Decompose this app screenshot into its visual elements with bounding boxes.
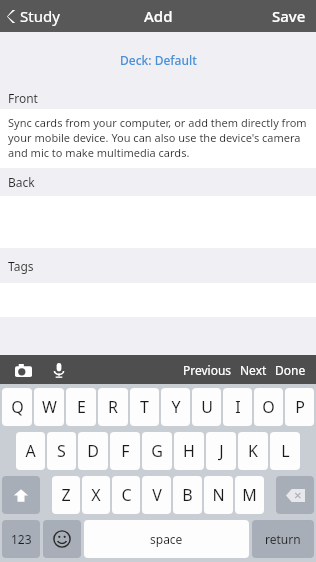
- staticText: V: [152, 484, 162, 506]
- button[interactable]: Q: [2, 388, 32, 426]
- button[interactable]: U: [192, 388, 221, 426]
- staticText: I: [235, 396, 241, 418]
- staticText: F: [121, 440, 130, 462]
- staticText: Front: [8, 90, 38, 106]
- staticText: E: [77, 396, 86, 418]
- staticText: K: [248, 440, 258, 462]
- staticText: H: [183, 440, 195, 462]
- staticText: G: [151, 440, 163, 462]
- button[interactable]: Next: [236, 355, 271, 384]
- staticText: M: [242, 484, 257, 506]
- button[interactable]: J: [206, 432, 236, 470]
- button[interactable]: Tags: [0, 248, 316, 283]
- staticText: J: [219, 440, 224, 462]
- button[interactable]: D: [78, 432, 108, 470]
- staticText: Q: [11, 396, 24, 418]
- button[interactable]: S: [47, 432, 76, 470]
- button[interactable]: space: [84, 520, 249, 558]
- button[interactable]: I: [223, 388, 252, 426]
- button[interactable]: Previous: [179, 355, 236, 384]
- staticText: C: [121, 484, 132, 506]
- staticText: B: [182, 484, 193, 506]
- button[interactable]: X: [82, 476, 110, 514]
- staticText: Save: [272, 6, 306, 26]
- staticText: return: [265, 531, 301, 547]
- staticText: O: [262, 396, 275, 418]
- staticText: R: [108, 396, 118, 418]
- staticText: Y: [171, 396, 181, 418]
- staticText: Previous: [183, 362, 232, 378]
- staticText: Back: [8, 174, 35, 190]
- button[interactable]: O: [254, 388, 283, 426]
- staticText: Study: [20, 6, 60, 26]
- button[interactable]: G: [142, 432, 172, 470]
- staticText: L: [281, 440, 290, 462]
- button[interactable]: 123: [2, 520, 40, 558]
- button[interactable]: R: [98, 388, 128, 426]
- staticText: Next: [240, 362, 267, 378]
- button[interactable]: N: [204, 476, 233, 514]
- button[interactable]: E: [66, 388, 96, 426]
- staticText: Done: [275, 362, 306, 378]
- staticText: P: [295, 396, 305, 418]
- button[interactable]: K: [238, 432, 268, 470]
- button[interactable]: Save: [262, 0, 316, 32]
- staticText: N: [212, 484, 225, 506]
- button[interactable]: L: [270, 432, 300, 470]
- button[interactable]: Delete: [276, 476, 314, 514]
- button[interactable]: Emoji: [43, 520, 81, 558]
- button[interactable]: Sync cards from your computer, or add th…: [0, 109, 316, 168]
- button[interactable]: C: [112, 476, 140, 514]
- button[interactable]: return: [252, 520, 314, 558]
- button[interactable]: A: [16, 432, 45, 470]
- button[interactable]: V: [142, 476, 171, 514]
- button[interactable]: Deck: Default: [120, 52, 197, 68]
- staticText: Z: [61, 484, 71, 506]
- button[interactable]: P: [285, 388, 314, 426]
- button[interactable]: H: [174, 432, 204, 470]
- button[interactable]: W: [34, 388, 64, 426]
- staticText: T: [140, 396, 149, 418]
- button[interactable]: Z: [52, 476, 80, 514]
- button[interactable]: Study: [0, 0, 68, 32]
- button[interactable]: B: [173, 476, 202, 514]
- staticText: U: [201, 396, 213, 418]
- button[interactable]: M: [235, 476, 264, 514]
- staticText: X: [91, 484, 101, 506]
- staticText: Sync cards from your computer, or add th…: [8, 115, 308, 160]
- button[interactable]: Y: [161, 388, 190, 426]
- staticText: A: [25, 440, 36, 462]
- button[interactable]: Done: [271, 355, 310, 384]
- button[interactable]: Camera: [10, 359, 36, 381]
- staticText: 123: [11, 531, 32, 547]
- staticText: D: [87, 440, 99, 462]
- staticText: space: [150, 531, 183, 547]
- button[interactable]: Microphone: [48, 359, 70, 381]
- staticText: Tags: [8, 258, 34, 274]
- staticText: S: [57, 440, 66, 462]
- button[interactable]: F: [110, 432, 140, 470]
- staticText: W: [42, 396, 57, 418]
- button[interactable]: Shift: [2, 476, 40, 514]
- staticText: Add: [144, 6, 173, 26]
- button[interactable]: T: [130, 388, 159, 426]
